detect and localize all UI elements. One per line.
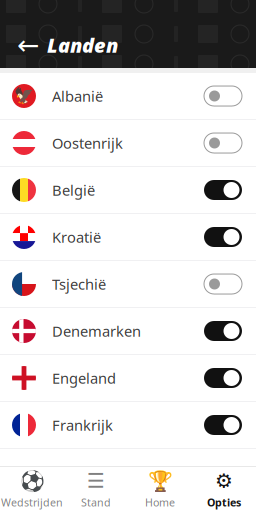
staticText: Wedstrijden	[1, 495, 63, 509]
staticText: ⚽	[19, 469, 44, 492]
staticText: ☰	[87, 470, 105, 492]
staticText: Home	[145, 495, 175, 509]
button[interactable]: 🦅	[0, 73, 256, 120]
button[interactable]: Oostenrijk	[0, 120, 256, 167]
staticText: Denemarken	[52, 321, 141, 341]
staticText: Tsjechië	[52, 274, 106, 294]
button[interactable]: Kroatië	[0, 214, 256, 261]
staticText: 🏆	[147, 469, 172, 492]
staticText: België	[52, 180, 95, 200]
staticText: ⚙	[215, 470, 233, 492]
staticText: Opties	[207, 495, 241, 509]
button[interactable]: Engeland	[0, 355, 256, 402]
button[interactable]: België	[0, 167, 256, 214]
button[interactable]: Tsjechië	[0, 261, 256, 308]
staticText: Frankrijk	[52, 415, 113, 435]
button[interactable]: ☰	[64, 468, 128, 510]
staticText: Oostenrijk	[52, 133, 123, 153]
button[interactable]: ⚙	[192, 468, 256, 510]
button[interactable]: 🏆	[128, 468, 192, 510]
button[interactable]: Frankrijk	[0, 402, 256, 449]
staticText: Landen	[47, 32, 118, 58]
staticText: Kroatië	[52, 227, 101, 247]
staticText: Albanië	[52, 86, 103, 106]
staticText: Stand	[81, 495, 111, 509]
button[interactable]: Back	[9, 25, 47, 65]
button[interactable]: ⚽	[0, 468, 64, 510]
staticText: ←	[17, 30, 39, 60]
staticText: Engeland	[52, 368, 116, 388]
staticText: 🦅	[14, 87, 34, 105]
button[interactable]: Denemarken	[0, 308, 256, 355]
